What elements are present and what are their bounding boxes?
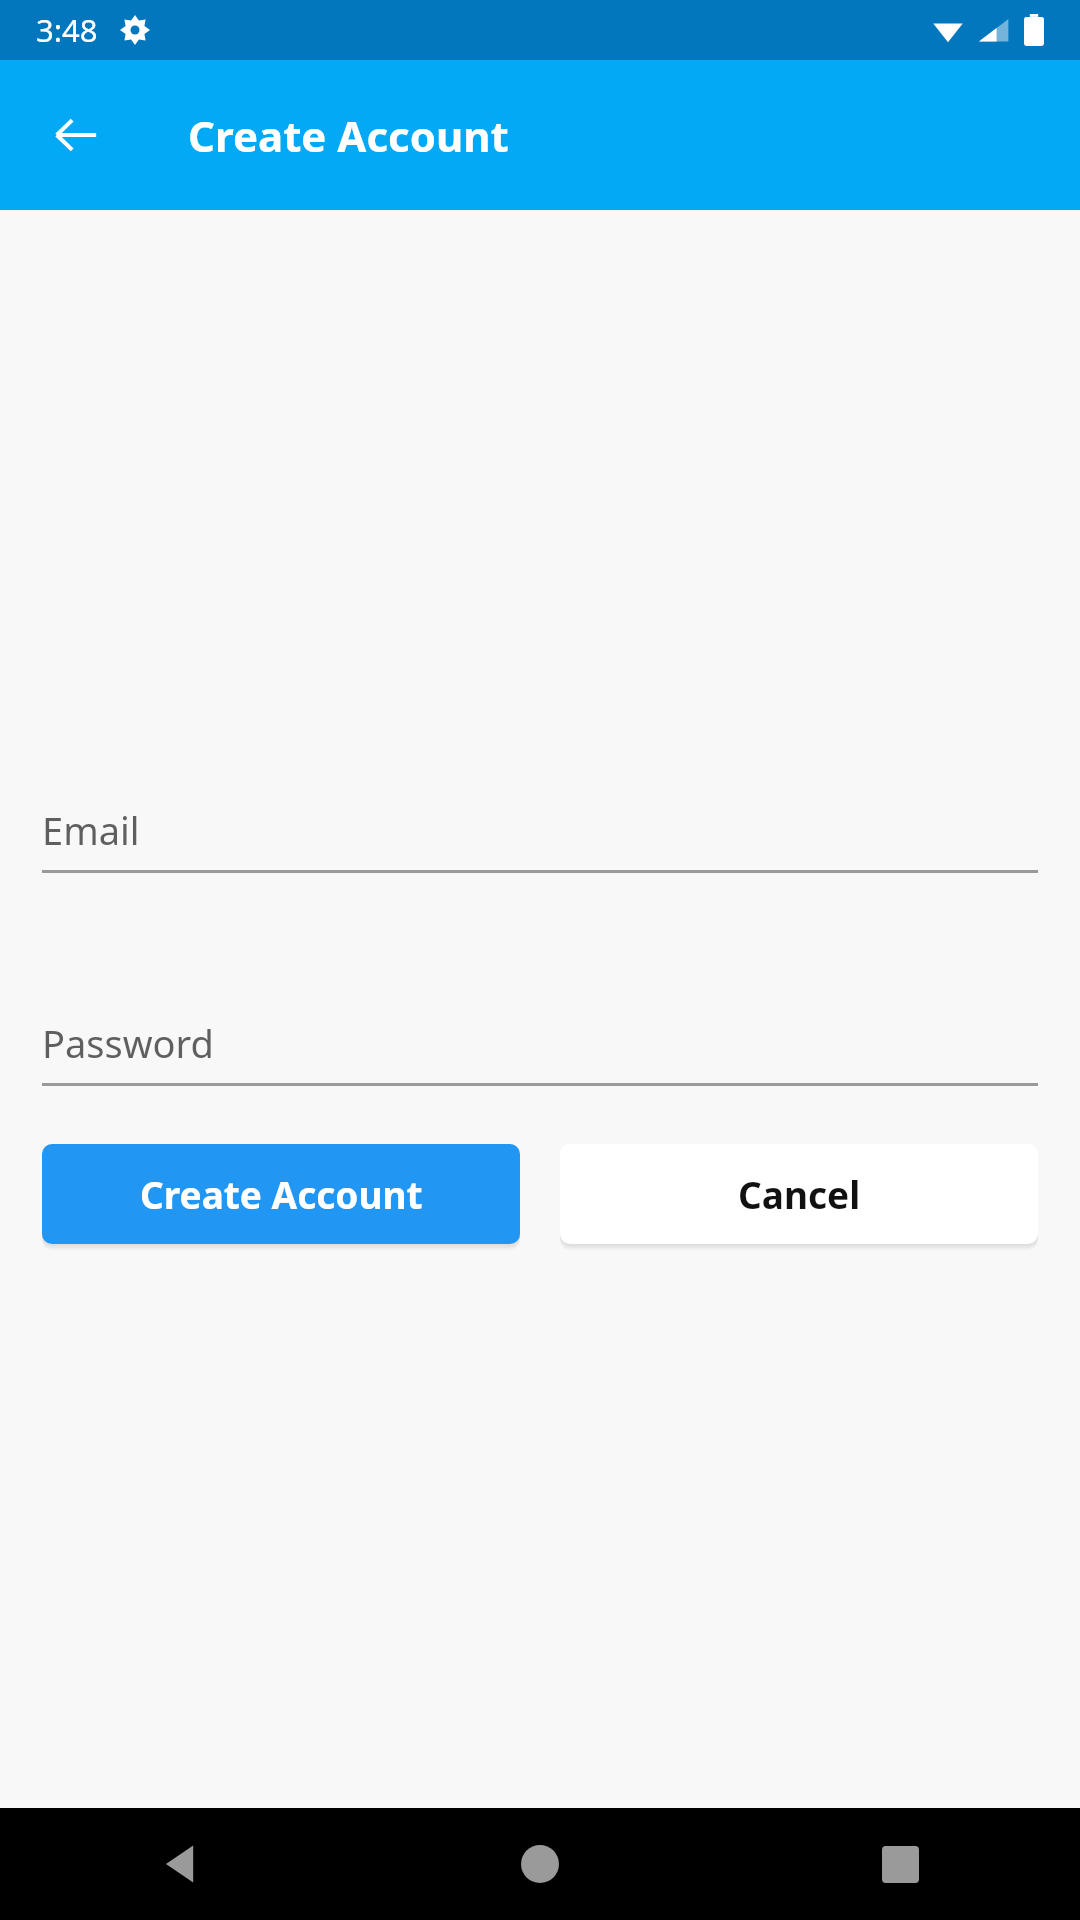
staticText: Email	[42, 804, 140, 856]
button[interactable]: Back	[0, 1808, 360, 1920]
button[interactable]: Email	[42, 790, 1038, 873]
button[interactable]: Password	[42, 1003, 1038, 1086]
button[interactable]: Recent apps	[720, 1808, 1080, 1920]
staticText: 3:48	[36, 9, 98, 51]
button[interactable]: Cancel	[560, 1144, 1038, 1244]
staticText: Create Account	[140, 1169, 423, 1219]
staticText: Password	[42, 1017, 214, 1069]
staticText: Create Account	[188, 107, 509, 164]
button[interactable]: Home	[360, 1808, 720, 1920]
staticText: Cancel	[738, 1169, 861, 1219]
button[interactable]: Create Account	[42, 1144, 520, 1244]
button[interactable]: Back	[34, 93, 118, 177]
